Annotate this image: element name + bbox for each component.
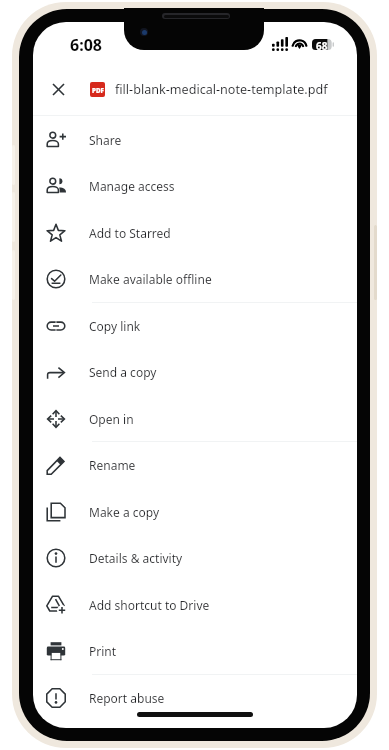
staticText: Add shortcut to Drive [89,597,210,613]
button[interactable]: Share [33,116,357,163]
staticText: Rename [89,457,136,473]
staticText: Share [89,132,122,148]
button[interactable]: Copy link [33,302,357,349]
button[interactable]: Manage access [33,162,357,209]
staticText: PDF [92,86,104,94]
button[interactable]: Rename [33,441,357,488]
staticText: Details & activity [89,550,183,566]
staticText: fill-blank-medical-note-template.pdf [115,81,328,98]
button[interactable]: Open in [33,395,357,442]
staticText: Add to Starred [89,225,171,241]
button[interactable]: Report abuse [33,674,357,721]
button[interactable]: Close [36,67,80,111]
staticText: Copy link [89,318,141,334]
staticText: Report abuse [89,690,165,706]
button[interactable]: Make available offline [33,255,357,302]
staticText: 68 [316,39,328,50]
staticText: Make a copy [89,504,160,520]
button[interactable]: Add shortcut to Drive [33,581,357,628]
button[interactable]: Add to Starred [33,209,357,256]
button[interactable]: Send a copy [33,348,357,395]
button[interactable]: Details & activity [33,534,357,581]
staticText: Send a copy [89,364,157,380]
staticText: 6:08 [70,34,102,56]
staticText: Make available offline [89,271,212,287]
staticText: Open in [89,411,134,427]
staticText: Print [89,643,117,659]
button[interactable]: Print [33,627,357,674]
staticText: Manage access [89,178,175,194]
button[interactable]: Make a copy [33,488,357,535]
